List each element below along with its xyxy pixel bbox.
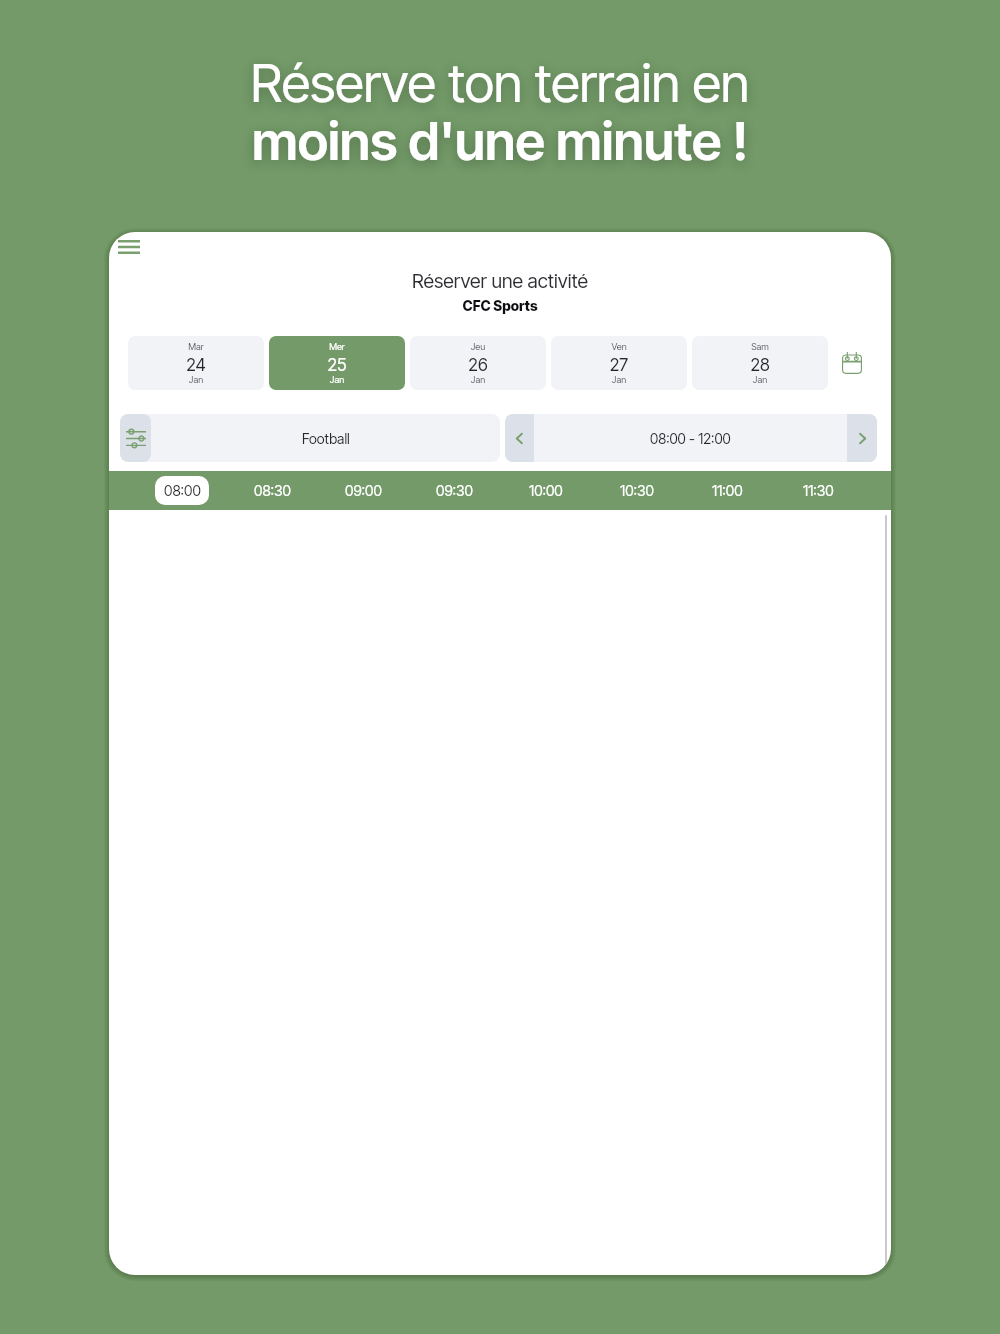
staticText: 25 [269, 354, 405, 375]
staticText: Football [302, 430, 350, 447]
staticText: Jeu [410, 341, 546, 352]
button[interactable]: Sam [692, 336, 828, 390]
staticText: Réserver une activité [109, 269, 891, 293]
staticText: Mer [269, 341, 405, 352]
button[interactable]: Mer [269, 336, 405, 390]
button[interactable]: 10:00 [529, 471, 563, 510]
staticText: 09:30 [436, 482, 474, 500]
staticText: Jan [128, 374, 264, 385]
button[interactable]: Jeu [410, 336, 546, 390]
button[interactable]: Ven [551, 336, 687, 390]
button[interactable]: 08:00 [155, 476, 209, 505]
button[interactable]: 08:00 - 12:00 [534, 414, 847, 462]
staticText: 08:30 [254, 482, 291, 500]
button[interactable]: 08:30 [254, 471, 291, 510]
staticText: Réserve ton terrain en [0, 51, 1000, 115]
staticText: 24 [128, 354, 264, 375]
staticText: 08:00 [164, 482, 201, 500]
button[interactable]: Open menu [109, 232, 149, 268]
staticText: 10:30 [620, 482, 654, 500]
button[interactable]: Previous time slot [505, 414, 534, 462]
button[interactable]: 11:00 [712, 471, 743, 510]
staticText: Jan [410, 374, 546, 385]
staticText: 09:00 [345, 482, 382, 500]
button[interactable]: Open calendar [836, 347, 868, 379]
button[interactable]: 09:30 [436, 471, 474, 510]
staticText: Sam [692, 341, 828, 352]
staticText: Jan [551, 374, 687, 385]
button[interactable]: Mar [128, 336, 264, 390]
staticText: 10:00 [529, 482, 563, 500]
button[interactable]: 10:30 [620, 471, 654, 510]
staticText: 11:00 [712, 482, 743, 500]
staticText: 28 [692, 354, 828, 375]
staticText: 11:30 [803, 482, 834, 500]
button[interactable]: 11:30 [803, 471, 834, 510]
staticText: CFC Sports [109, 297, 891, 314]
staticText: Mar [128, 341, 264, 352]
staticText: 27 [551, 354, 687, 375]
button[interactable]: Filter activities [120, 414, 500, 462]
button[interactable]: Filter activities [120, 414, 151, 462]
staticText: 08:00 - 12:00 [650, 430, 731, 447]
staticText: Jan [692, 374, 828, 385]
staticText: 26 [410, 354, 546, 375]
button[interactable]: Next time slot [847, 414, 877, 462]
button[interactable]: 09:00 [345, 471, 382, 510]
staticText: Jan [269, 374, 405, 385]
staticText: Ven [551, 341, 687, 352]
staticText: moins d'une minute ! [0, 109, 1000, 173]
